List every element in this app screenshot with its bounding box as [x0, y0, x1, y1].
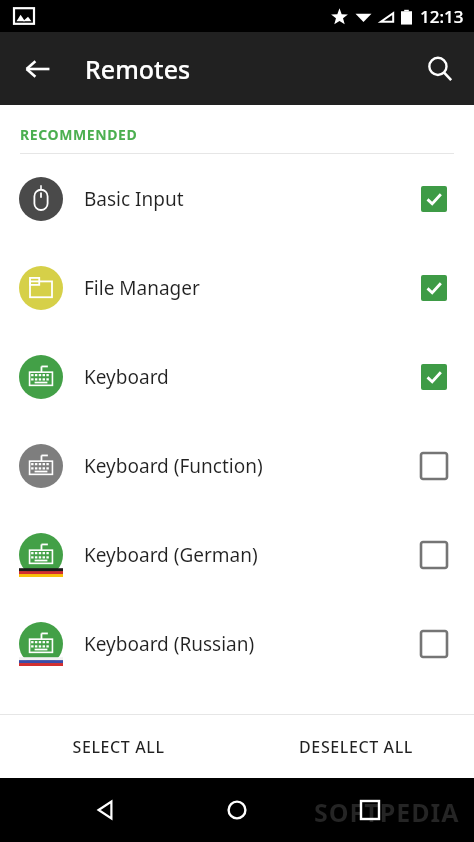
button[interactable]: Not selected	[408, 440, 460, 492]
button[interactable]: Not selected	[408, 529, 460, 581]
button[interactable]: Selected	[408, 351, 460, 403]
staticText: Basic Input	[84, 186, 184, 212]
staticText: Remotes	[85, 52, 191, 86]
staticText: Keyboard (Russian)	[84, 631, 255, 657]
button[interactable]: Keyboard (German)	[0, 510, 474, 599]
staticText: Keyboard (Function)	[84, 453, 263, 479]
button[interactable]: DESELECT ALL	[237, 715, 474, 778]
button[interactable]: Not selected	[408, 618, 460, 670]
button[interactable]: Keyboard (Russian)	[0, 599, 474, 688]
staticText: RECOMMENDED	[20, 125, 138, 144]
button[interactable]: Keyboard	[0, 332, 474, 421]
staticText: SELECT ALL	[72, 736, 165, 758]
button[interactable]: Back	[81, 786, 129, 834]
button[interactable]: Selected	[408, 262, 460, 314]
staticText: Keyboard (German)	[84, 542, 258, 568]
button[interactable]: Search	[416, 45, 464, 93]
button[interactable]: Recents	[346, 786, 394, 834]
staticText: DESELECT ALL	[299, 736, 413, 758]
staticText: File Manager	[84, 275, 200, 301]
button[interactable]: Back	[14, 45, 62, 93]
button[interactable]: Basic Input	[0, 154, 474, 243]
button[interactable]: Home	[213, 786, 261, 834]
button[interactable]: Keyboard (Function)	[0, 421, 474, 510]
button[interactable]: SELECT ALL	[0, 715, 237, 778]
button[interactable]: Selected	[408, 173, 460, 225]
staticText: SOFTPEDIA	[314, 795, 460, 829]
staticText: 12:13	[420, 5, 464, 28]
button[interactable]: File Manager	[0, 243, 474, 332]
staticText: Keyboard	[84, 364, 169, 390]
